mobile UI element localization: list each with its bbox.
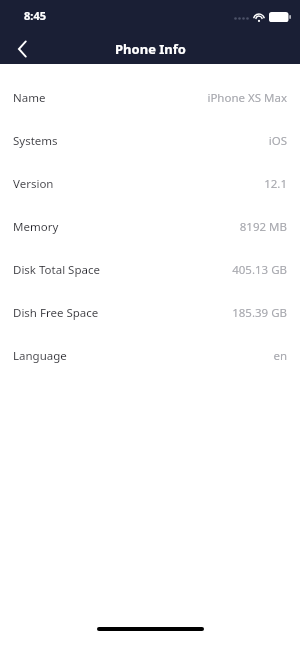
button[interactable]: Back [0,33,44,64]
button[interactable]: Dish Free Space [0,291,300,334]
staticText: iPhone XS Max [207,90,287,106]
button[interactable]: Language [0,334,300,377]
button[interactable]: Systems [0,119,300,162]
button[interactable]: Disk Total Space [0,248,300,291]
staticText: Memory [13,219,59,235]
staticText: Phone Info [115,40,186,58]
staticText: iOS [268,133,287,149]
staticText: Systems [13,133,58,149]
staticText: Language [13,348,67,364]
staticText: Dish Free Space [13,305,99,321]
button[interactable]: Memory [0,205,300,248]
staticText: 8:45 [24,8,46,23]
staticText: 185.39 GB [232,305,287,321]
staticText: 405.13 GB [232,262,287,278]
staticText: en [273,348,287,364]
staticText: Name [13,90,46,106]
staticText: 8192 MB [239,219,287,235]
button[interactable]: Name [0,76,300,119]
staticText: Disk Total Space [13,262,100,278]
staticText: Version [13,176,54,192]
staticText: 12.1 [264,176,287,192]
button[interactable]: Version [0,162,300,205]
